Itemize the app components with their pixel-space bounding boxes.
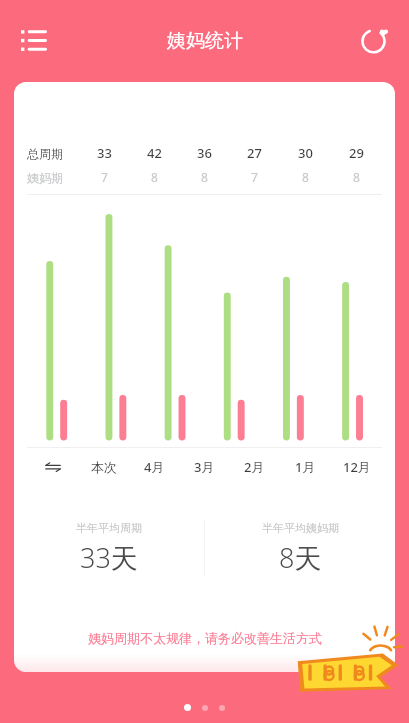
- button[interactable]: 12月: [331, 448, 382, 486]
- staticText: 42: [147, 144, 162, 162]
- button[interactable]: 半年平均姨妈期: [205, 521, 395, 576]
- staticText: 8: [302, 169, 309, 185]
- staticText: 1月: [295, 458, 316, 476]
- button[interactable]: Cycle: [353, 19, 397, 63]
- staticText: 8天: [279, 539, 322, 576]
- staticText: 7: [251, 169, 258, 185]
- staticText: 本次: [91, 459, 117, 475]
- button[interactable]: Menu: [12, 19, 56, 63]
- button[interactable]: 2月: [229, 448, 280, 486]
- staticText: 8: [201, 169, 208, 185]
- staticText: 8: [151, 169, 158, 185]
- staticText: 姨妈统计: [167, 29, 243, 53]
- staticText: 半年平均周期: [76, 521, 142, 535]
- button[interactable]: 本次: [79, 448, 129, 486]
- staticText: 12月: [343, 458, 371, 476]
- staticText: 33: [97, 144, 112, 162]
- staticText: 总周期: [27, 146, 63, 161]
- staticText: 姨妈期: [27, 170, 63, 185]
- staticText: 2月: [244, 458, 265, 476]
- staticText: 30: [298, 144, 313, 162]
- staticText: 4月: [144, 458, 165, 476]
- staticText: 27: [247, 144, 262, 162]
- staticText: 姨妈周期不太规律，请务必改善生活方式: [88, 630, 322, 646]
- staticText: 36: [197, 144, 212, 162]
- staticText: 7: [101, 169, 108, 185]
- staticText: 8: [353, 169, 360, 185]
- staticText: 29: [349, 144, 364, 162]
- button[interactable]: 3月: [179, 448, 229, 486]
- button[interactable]: 1月: [280, 448, 331, 486]
- staticText: 3月: [194, 458, 215, 476]
- staticText: 33天: [80, 539, 138, 576]
- button[interactable]: Switch chart: [27, 448, 79, 486]
- button[interactable]: 半年平均周期: [14, 521, 204, 576]
- staticText: 半年平均姨妈期: [262, 521, 339, 535]
- button[interactable]: 4月: [129, 448, 179, 486]
